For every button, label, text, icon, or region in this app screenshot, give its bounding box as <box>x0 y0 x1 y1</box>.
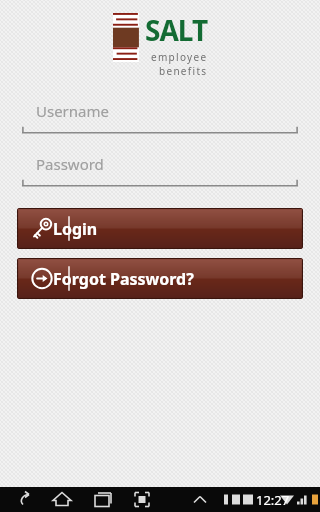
button[interactable]: Username <box>22 100 298 134</box>
staticText: benefits <box>159 64 208 78</box>
staticText: Username <box>36 101 109 121</box>
staticText: 12:27 <box>256 491 290 509</box>
staticText: Login <box>53 218 98 240</box>
staticText: SALT <box>145 11 208 49</box>
staticText: Password <box>36 154 104 174</box>
button[interactable]: Password <box>22 153 298 187</box>
staticText: employee <box>151 50 208 64</box>
staticText: Forgot Password? <box>53 268 194 290</box>
button[interactable]: Forgot Password <box>17 258 303 299</box>
button[interactable]: Login <box>17 208 303 249</box>
